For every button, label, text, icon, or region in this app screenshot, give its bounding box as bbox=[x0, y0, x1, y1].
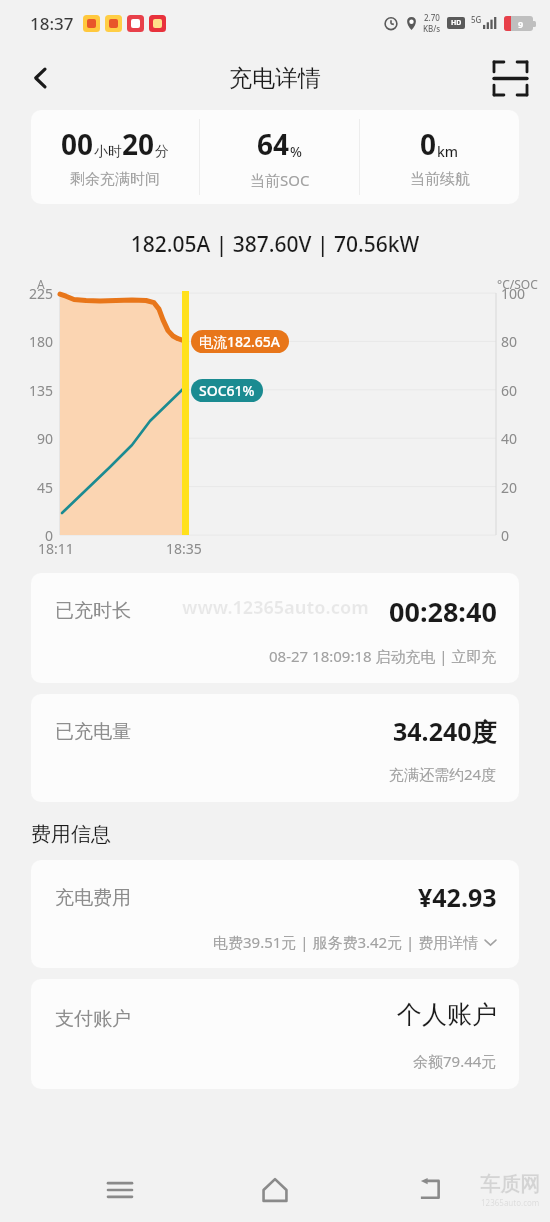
staticText: 45 bbox=[0, 478, 53, 497]
staticText: % bbox=[290, 142, 302, 161]
staticText: 18:35 bbox=[166, 539, 202, 558]
staticText: SOC61% bbox=[199, 381, 255, 400]
staticText: 电流182.65A bbox=[199, 332, 281, 351]
staticText: 00:28:40 bbox=[389, 593, 497, 630]
button[interactable]: 充电费用 bbox=[31, 860, 519, 968]
button[interactable]: Back bbox=[404, 1164, 456, 1216]
staticText: 34.240度 bbox=[393, 714, 497, 748]
staticText: HD bbox=[451, 18, 462, 28]
staticText: 12365auto.com bbox=[481, 1197, 540, 1208]
staticText: 当前SOC bbox=[250, 170, 310, 190]
staticText: 40 bbox=[501, 429, 518, 448]
button[interactable]: 电费39.51元 | 服务费3.42元 | 费用详情 bbox=[213, 932, 497, 952]
button[interactable]: Back bbox=[18, 55, 64, 101]
staticText: 车质网 bbox=[480, 1172, 540, 1197]
staticText: 小时 bbox=[94, 143, 122, 161]
staticText: 20 bbox=[122, 125, 155, 163]
staticText: 充满还需约24度 bbox=[389, 764, 497, 784]
staticText: 剩余充满时间 bbox=[70, 170, 160, 189]
button[interactable]: 0 bbox=[360, 110, 519, 204]
staticText: 100 bbox=[501, 284, 526, 303]
button[interactable]: 已充电量 bbox=[31, 694, 519, 802]
button[interactable]: 64 bbox=[200, 110, 359, 204]
staticText: 电费39.51元 | 服务费3.42元 | 费用详情 bbox=[213, 932, 479, 952]
staticText: 80 bbox=[501, 332, 518, 351]
staticText: 18:11 bbox=[38, 539, 74, 558]
staticText: 个人账户 bbox=[397, 999, 497, 1030]
staticText: 已充时长 bbox=[55, 599, 131, 623]
staticText: ¥42.93 bbox=[418, 880, 497, 914]
staticText: 当前续航 bbox=[410, 170, 470, 189]
button[interactable]: 支付账户 bbox=[31, 979, 519, 1089]
staticText: 64 bbox=[257, 125, 290, 163]
staticText: 分 bbox=[155, 143, 169, 161]
staticText: 60 bbox=[501, 381, 518, 400]
staticText: 182.05A | 387.60V | 70.56kW bbox=[0, 230, 550, 259]
button[interactable]: Scan bbox=[486, 54, 534, 102]
staticText: 9 bbox=[518, 18, 524, 30]
button[interactable]: 已充时长 bbox=[31, 573, 519, 683]
staticText: km bbox=[437, 142, 459, 161]
staticText: www.12365auto.com bbox=[182, 595, 369, 620]
staticText: 0 bbox=[501, 526, 510, 545]
staticText: 2.70 bbox=[424, 12, 440, 23]
staticText: A bbox=[37, 276, 45, 292]
staticText: 0 bbox=[420, 125, 437, 163]
button[interactable]: Home bbox=[249, 1164, 301, 1216]
staticText: 90 bbox=[0, 429, 53, 448]
staticText: 135 bbox=[0, 381, 53, 400]
staticText: 0 bbox=[0, 526, 53, 545]
button[interactable]: 00 bbox=[31, 110, 199, 204]
staticText: 5G bbox=[471, 14, 482, 25]
staticText: KB/s bbox=[423, 23, 441, 34]
staticText: 余额79.44元 bbox=[413, 1051, 497, 1071]
staticText: 20 bbox=[501, 478, 518, 497]
staticText: 费用信息 bbox=[31, 822, 111, 847]
staticText: 00 bbox=[61, 125, 94, 163]
staticText: 180 bbox=[0, 332, 53, 351]
staticText: 08-27 18:09:18 启动充电 | 立即充 bbox=[269, 646, 497, 666]
staticText: 已充电量 bbox=[55, 720, 131, 744]
staticText: 225 bbox=[0, 284, 53, 303]
staticText: 18:37 bbox=[30, 12, 74, 35]
button[interactable]: Recent apps bbox=[94, 1164, 146, 1216]
staticText: 充电详情 bbox=[229, 64, 321, 93]
staticText: °C/SOC bbox=[497, 276, 538, 292]
staticText: 支付账户 bbox=[55, 1007, 131, 1031]
staticText: 充电费用 bbox=[55, 886, 131, 910]
